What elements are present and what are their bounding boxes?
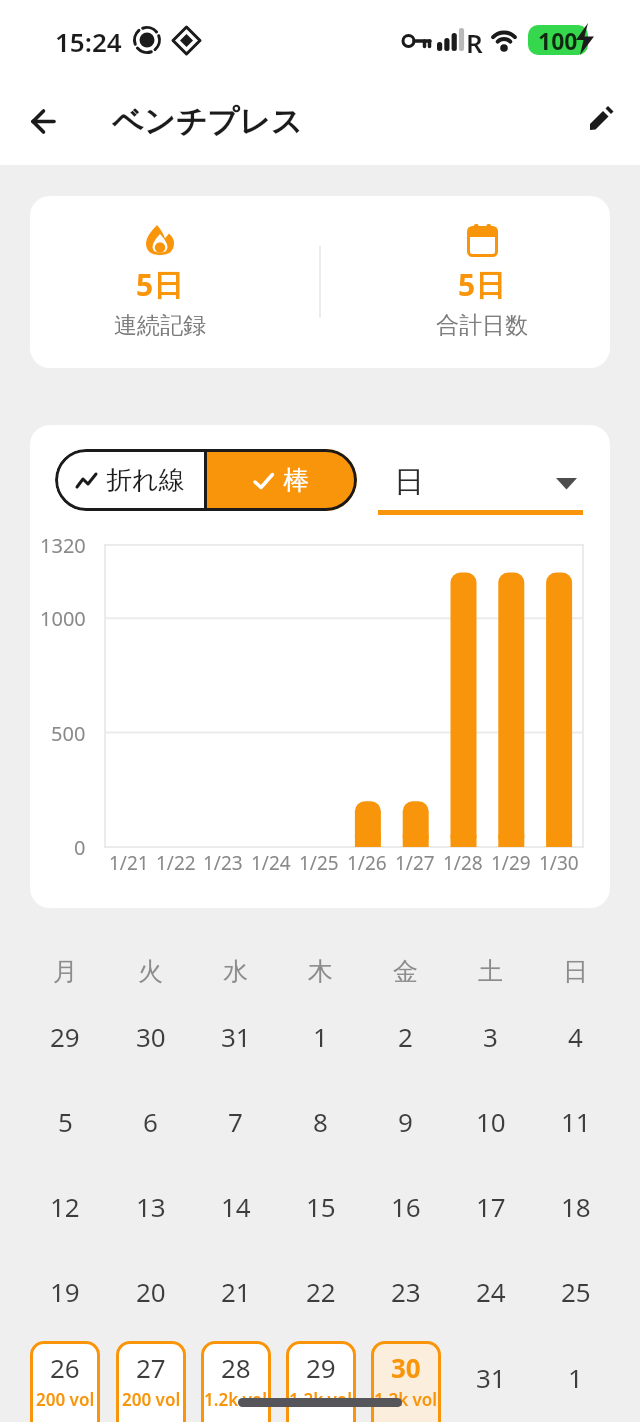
button[interactable]: 1 [278, 1019, 363, 1053]
staticText: 30 [136, 1019, 166, 1053]
button[interactable]: 2 [363, 1019, 448, 1053]
staticText: 1.2k vol [374, 1388, 438, 1411]
button[interactable]: 19 [22, 1274, 108, 1308]
staticText: 1/22 [156, 850, 196, 874]
button[interactable]: 9 [363, 1104, 448, 1138]
staticText: 500 [51, 720, 86, 746]
staticText: 22 [306, 1274, 336, 1308]
staticText: 11 [561, 1104, 591, 1138]
button[interactable]: 24 [448, 1274, 533, 1308]
button[interactable]: 10 [448, 1104, 533, 1138]
staticText: 200 vol [122, 1388, 181, 1411]
staticText: 1/29 [491, 850, 531, 874]
button[interactable]: 25 [533, 1274, 618, 1308]
staticText: 土 [478, 956, 503, 987]
staticText: 日 [394, 463, 424, 501]
staticText: 1/28 [443, 850, 483, 874]
staticText: 火 [138, 956, 163, 987]
button[interactable]: 11 [533, 1104, 618, 1138]
staticText: 折れ線 [106, 464, 185, 497]
button[interactable]: 5 [22, 1104, 108, 1138]
staticText: 連続記録 [114, 311, 206, 340]
button[interactable]: 30 [371, 1341, 441, 1422]
staticText: 1/25 [299, 850, 339, 874]
staticText: 1.2k vol [204, 1388, 268, 1411]
button[interactable]: 13 [108, 1189, 193, 1223]
staticText: 月 [53, 956, 78, 987]
button[interactable]: 30 [108, 1019, 193, 1053]
staticText: 1/27 [395, 850, 435, 874]
button[interactable]: 31 [193, 1019, 278, 1053]
button[interactable]: 23 [363, 1274, 448, 1308]
staticText: 23 [391, 1274, 421, 1308]
staticText: 100 [538, 25, 578, 55]
staticText: 15:24 [55, 24, 122, 59]
button[interactable]: 29 [22, 1019, 108, 1053]
staticText: 日 [563, 956, 588, 987]
button[interactable]: 22 [278, 1274, 363, 1308]
button[interactable]: 29 [286, 1341, 356, 1422]
button[interactable]: 16 [363, 1189, 448, 1223]
staticText: 4 [568, 1019, 583, 1053]
button[interactable]: 折れ線 [55, 449, 205, 511]
button[interactable]: 26 [30, 1341, 100, 1422]
staticText: 12 [50, 1189, 80, 1223]
staticText: 31 [221, 1019, 251, 1053]
button[interactable]: 14 [193, 1189, 278, 1223]
staticText: 6 [143, 1104, 158, 1138]
staticText: 1/24 [251, 850, 291, 874]
button[interactable]: 3 [448, 1019, 533, 1053]
button[interactable]: 18 [533, 1189, 618, 1223]
button[interactable]: 27 [116, 1341, 186, 1422]
staticText: 合計日数 [436, 311, 528, 340]
staticText: 1320 [40, 532, 86, 558]
staticText: 棒 [283, 464, 309, 497]
staticText: R [466, 25, 483, 60]
staticText: 29 [306, 1350, 336, 1385]
staticText: 1/21 [109, 850, 149, 874]
staticText: 5日 [136, 264, 184, 305]
button[interactable]: 15 [278, 1189, 363, 1223]
button[interactable]: 12 [22, 1189, 108, 1223]
button[interactable]: 21 [193, 1274, 278, 1308]
button[interactable] [18, 96, 68, 146]
staticText: 1 [313, 1019, 328, 1053]
button[interactable]: 日 [378, 445, 583, 520]
staticText: 1/26 [347, 850, 387, 874]
button[interactable]: 棒 [205, 449, 357, 511]
button[interactable]: 28 [201, 1341, 271, 1422]
staticText: 31 [476, 1360, 506, 1395]
staticText: 10 [476, 1104, 506, 1138]
staticText: 1/23 [203, 850, 243, 874]
button[interactable] [576, 94, 626, 144]
staticText: 17 [476, 1189, 506, 1223]
staticText: 3 [483, 1019, 498, 1053]
staticText: 8 [313, 1104, 328, 1138]
staticText: ベンチプレス [112, 102, 303, 141]
staticText: 5 [58, 1104, 73, 1138]
staticText: 28 [221, 1350, 251, 1385]
staticText: 30 [391, 1350, 421, 1385]
button[interactable]: 1 [533, 1341, 618, 1422]
staticText: 金 [393, 956, 418, 987]
staticText: 水 [223, 956, 248, 987]
staticText: 18 [561, 1189, 591, 1223]
staticText: 9 [398, 1104, 413, 1138]
button[interactable]: 17 [448, 1189, 533, 1223]
staticText: 20 [136, 1274, 166, 1308]
button[interactable]: 7 [193, 1104, 278, 1138]
staticText: 25 [561, 1274, 591, 1308]
button[interactable]: 6 [108, 1104, 193, 1138]
staticText: 26 [50, 1350, 80, 1385]
staticText: 7 [228, 1104, 243, 1138]
button[interactable]: 4 [533, 1019, 618, 1053]
staticText: 2 [398, 1019, 413, 1053]
staticText: 1000 [40, 605, 86, 631]
button[interactable]: 20 [108, 1274, 193, 1308]
staticText: 200 vol [36, 1388, 95, 1411]
staticText: 19 [50, 1274, 80, 1308]
staticText: 16 [391, 1189, 421, 1223]
button[interactable]: 8 [278, 1104, 363, 1138]
button[interactable]: 31 [448, 1341, 533, 1422]
staticText: 1 [568, 1360, 583, 1395]
